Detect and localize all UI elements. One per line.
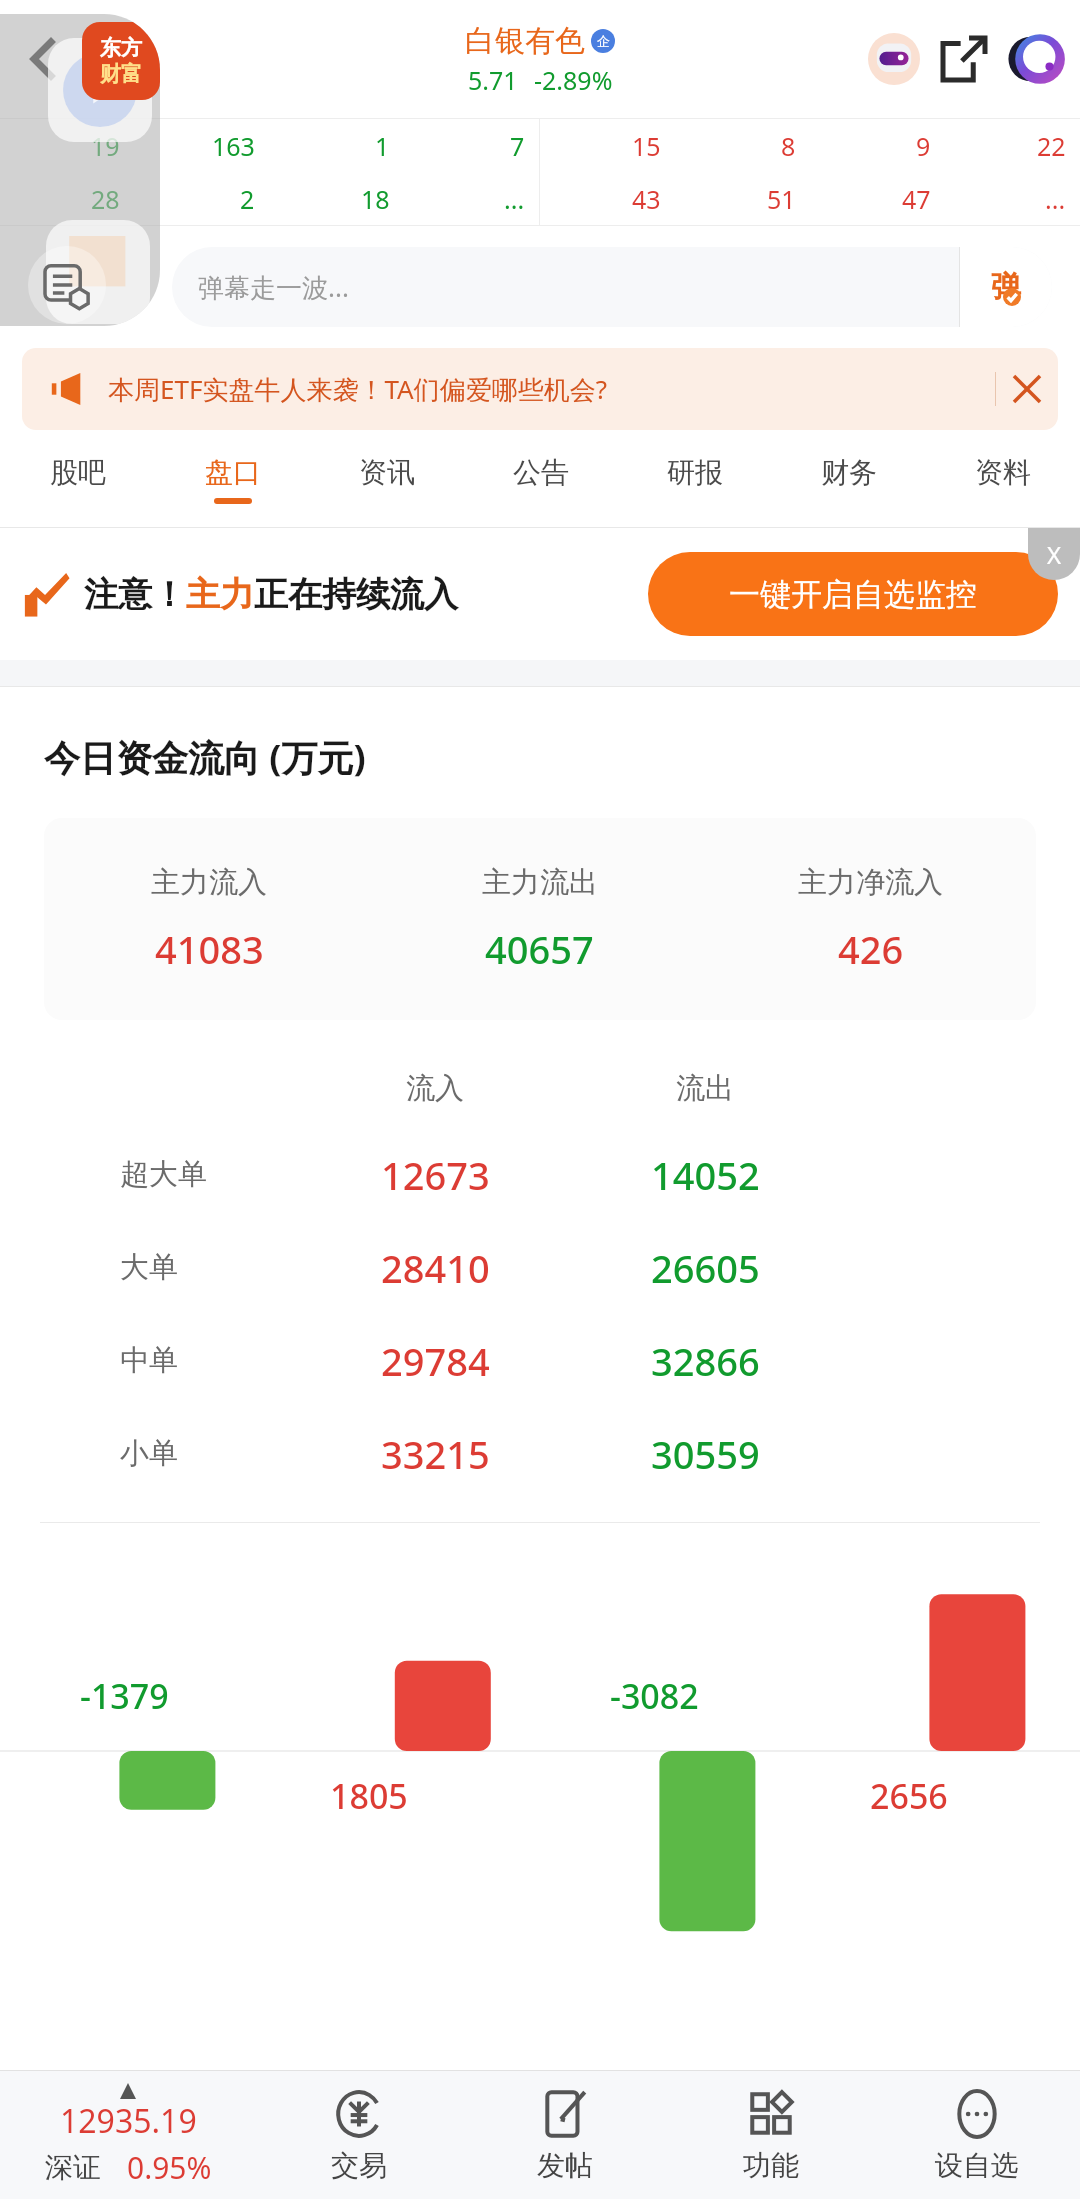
button[interactable]: 一键开启自选监控 [648, 552, 1058, 636]
staticText: 公告 [513, 455, 569, 490]
staticText: 盘口 [205, 455, 261, 490]
staticText: -1379 [80, 1673, 169, 1719]
staticText: 51 [767, 182, 796, 216]
button[interactable]: 资讯 [310, 430, 464, 528]
staticText: 发帖 [537, 2148, 593, 2183]
staticText: 14052 [651, 1149, 760, 1201]
staticText: 43 [632, 182, 661, 216]
button[interactable]: 设自选 [874, 2071, 1080, 2199]
button[interactable]: Close [996, 348, 1058, 430]
staticText: 26605 [651, 1242, 760, 1294]
button[interactable]: 发帖 [462, 2071, 668, 2199]
staticText: -3082 [610, 1673, 699, 1719]
staticText: 15 [632, 129, 661, 163]
staticText: 财富 [100, 61, 142, 87]
button[interactable]: 盘口 [155, 430, 310, 528]
staticText: 流入 [406, 1070, 464, 1107]
button[interactable]: Close ad [1028, 528, 1080, 580]
staticText: -2.89% [534, 63, 613, 97]
staticText: 研报 [667, 455, 723, 490]
staticText: 5.71 [468, 63, 518, 97]
button[interactable]: 公告 [464, 430, 618, 528]
staticText: 弹 [991, 268, 1021, 306]
staticText: 9 [916, 129, 931, 163]
staticText: 22 [1037, 129, 1066, 163]
staticText: 主力流出 [482, 864, 598, 901]
staticText: 426 [838, 923, 904, 975]
staticText: 30559 [651, 1428, 760, 1480]
staticText: 7 [510, 129, 525, 163]
button[interactable]: 股吧 [0, 430, 155, 528]
staticText: 中单 [120, 1342, 178, 1379]
staticText: 交易 [331, 2148, 387, 2183]
staticText: X [1047, 538, 1062, 571]
button[interactable]: Send danmaku [960, 247, 1052, 327]
staticText: 33215 [381, 1428, 490, 1480]
button[interactable]: 交易 [256, 2071, 462, 2199]
staticText: 2656 [870, 1773, 948, 1819]
staticText: 超大单 [120, 1156, 207, 1193]
button[interactable]: Share [928, 23, 1000, 95]
staticText: 28410 [381, 1242, 490, 1294]
button[interactable]: App switcher [0, 14, 160, 326]
staticText: 小单 [120, 1435, 178, 1472]
staticText: 2 [240, 182, 255, 216]
staticText: 47 [902, 182, 931, 216]
button[interactable]: 12935.19 [0, 2083, 256, 2188]
staticText: 8 [781, 129, 796, 163]
staticText: 41083 [155, 923, 264, 975]
staticText: 东方 [100, 35, 142, 61]
staticText: 深证 [45, 2150, 101, 2185]
staticText: ... [504, 182, 525, 216]
button[interactable]: 研报 [618, 430, 772, 528]
staticText: 本周ETF实盘牛人来袭！TA们偏爱哪些机会? [108, 371, 607, 407]
button[interactable]: 超大单 [0, 1128, 1080, 1221]
button[interactable]: 功能 [668, 2071, 874, 2199]
button[interactable]: 弹幕走一波... [172, 247, 1052, 327]
staticText: 1805 [330, 1773, 408, 1819]
staticText: 12673 [381, 1149, 490, 1201]
button[interactable]: 大单 [0, 1221, 1080, 1314]
staticText: 资料 [975, 455, 1031, 490]
staticText: 资讯 [359, 455, 415, 490]
button[interactable]: 小单 [0, 1407, 1080, 1500]
staticText: 28 [91, 182, 120, 216]
staticText: 18 [361, 182, 390, 216]
staticText: 19 [91, 129, 120, 163]
staticText: 一键开启自选监控 [729, 575, 977, 614]
staticText: 主力流入 [151, 864, 267, 901]
staticText: 大单 [120, 1249, 178, 1286]
staticText: 主力净流入 [798, 864, 943, 901]
staticText: 12935.19 [60, 2099, 197, 2143]
staticText: 32866 [651, 1335, 760, 1387]
button[interactable]: 资料 [926, 430, 1080, 528]
staticText: 163 [212, 129, 255, 163]
staticText: ... [1045, 182, 1066, 216]
staticText: 注意！ [84, 573, 186, 616]
button[interactable]: Back [14, 31, 70, 87]
staticText: 主力 [186, 573, 254, 616]
staticText: 今日资金流向 (万元) [44, 733, 366, 782]
staticText: 0.95% [127, 2147, 212, 2188]
staticText: 弹幕走一波... [198, 269, 349, 305]
button[interactable]: AI assistant [860, 25, 928, 93]
staticText: 功能 [743, 2148, 799, 2183]
staticText: 29784 [381, 1335, 490, 1387]
staticText: 流出 [676, 1070, 734, 1107]
staticText: 设自选 [935, 2148, 1019, 2183]
staticText: 40657 [485, 923, 594, 975]
button[interactable]: 本周ETF实盘牛人来袭！TA们偏爱哪些机会? [22, 348, 1058, 430]
button[interactable]: 财务 [772, 430, 926, 528]
button[interactable]: Search [1000, 23, 1072, 95]
button[interactable]: 中单 [0, 1314, 1080, 1407]
staticText: 白银有色 [465, 22, 585, 60]
staticText: 财务 [821, 455, 877, 490]
staticText: 正在持续流入 [254, 573, 458, 616]
staticText: 1 [375, 129, 390, 163]
staticText: 企 [597, 33, 610, 49]
staticText: 股吧 [50, 455, 106, 490]
